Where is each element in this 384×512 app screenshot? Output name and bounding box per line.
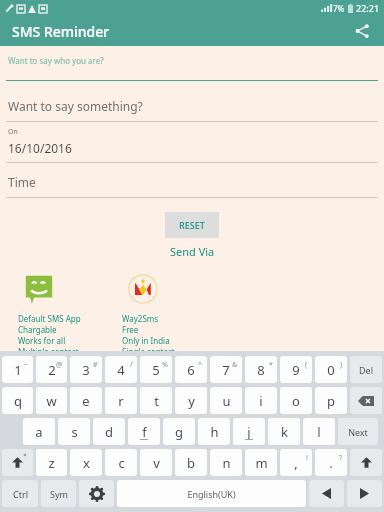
button[interactable]: k — [268, 418, 300, 445]
staticText: k — [281, 423, 288, 441]
button[interactable]: b — [175, 449, 207, 476]
button[interactable]: j — [233, 418, 265, 445]
button[interactable]: , — [280, 449, 312, 476]
button[interactable]: Way2Sms — [122, 274, 200, 351]
button[interactable]: 4 — [105, 356, 137, 383]
button[interactable]: 6 — [175, 356, 207, 383]
staticText: q — [14, 392, 22, 410]
button[interactable]: r — [105, 387, 137, 414]
staticText: 7% — [333, 3, 345, 14]
button[interactable]: 9 — [280, 356, 312, 383]
staticText: ? — [339, 453, 343, 463]
staticText: & — [232, 360, 238, 370]
staticText: s — [71, 423, 78, 441]
staticText: . — [329, 454, 333, 472]
staticText: 5 — [152, 361, 160, 379]
button[interactable]: v — [140, 449, 172, 476]
button[interactable]: Share — [346, 16, 378, 46]
button[interactable]: g — [163, 418, 195, 445]
staticText: Multiple contact — [18, 346, 79, 351]
button[interactable]: 0 — [315, 356, 347, 383]
staticText: / — [130, 360, 133, 370]
staticText: # — [93, 360, 98, 370]
staticText: Want to say something? — [8, 98, 143, 114]
button[interactable]: Move left — [309, 480, 344, 507]
staticText: ^ — [198, 360, 203, 370]
button[interactable]: x — [70, 449, 102, 476]
staticText: n — [222, 454, 231, 472]
button[interactable]: y — [175, 387, 207, 414]
button[interactable]: p — [315, 387, 347, 414]
staticText: 7 — [222, 361, 230, 379]
button[interactable]: z — [36, 449, 67, 476]
button[interactable]: English(UK) — [117, 480, 306, 507]
staticText: z — [48, 454, 55, 472]
staticText: y — [188, 392, 195, 410]
button[interactable]: h — [198, 418, 230, 445]
staticText: t — [154, 392, 159, 410]
button[interactable]: Ctrl — [2, 480, 38, 507]
button[interactable]: . — [315, 449, 347, 476]
staticText: ~ — [24, 360, 29, 370]
staticText: g — [175, 423, 183, 441]
staticText: 0 — [327, 361, 335, 379]
staticText: b — [187, 454, 195, 472]
button[interactable]: t — [140, 387, 172, 414]
staticText: j — [247, 423, 251, 441]
button[interactable]: 5 — [140, 356, 172, 383]
button[interactable]: 2 — [36, 356, 67, 383]
button[interactable]: 7 — [210, 356, 242, 383]
staticText: Single contact — [122, 346, 175, 351]
staticText: ) — [340, 360, 343, 370]
button[interactable]: w — [36, 387, 67, 414]
staticText: a — [35, 423, 43, 441]
staticText: c — [118, 454, 125, 472]
staticText: l — [317, 423, 321, 441]
button[interactable]: Send Via — [170, 244, 215, 259]
button[interactable]: 8 — [245, 356, 277, 383]
button[interactable]: c — [105, 449, 137, 476]
button[interactable]: n — [210, 449, 242, 476]
button[interactable]: Shift — [2, 449, 33, 476]
button[interactable]: Default SMS App — [18, 274, 96, 351]
button[interactable]: 3 — [70, 356, 102, 383]
staticText: m — [255, 454, 268, 472]
staticText: h — [210, 423, 219, 441]
staticText: SMS Reminder — [12, 22, 110, 41]
button[interactable]: Move right — [347, 480, 382, 507]
button[interactable]: s — [58, 418, 90, 445]
button[interactable]: m — [245, 449, 277, 476]
button[interactable]: a — [23, 418, 55, 445]
button[interactable]: Sym — [41, 480, 76, 507]
button[interactable]: Keyboard settings — [79, 480, 114, 507]
staticText: 16/10/2016 — [8, 140, 72, 156]
staticText: 9 — [292, 361, 300, 379]
button[interactable]: d — [93, 418, 125, 445]
staticText: 2 — [48, 361, 56, 379]
button[interactable]: f — [128, 418, 160, 445]
staticText: 4 — [117, 361, 125, 379]
staticText: Next — [348, 426, 368, 438]
button[interactable]: 1 — [2, 356, 33, 383]
staticText: o — [292, 392, 300, 410]
button[interactable]: u — [210, 387, 242, 414]
staticText: * — [269, 360, 273, 370]
button[interactable]: q — [2, 387, 33, 414]
staticText: Free — [122, 324, 139, 335]
button[interactable]: Backspace — [350, 387, 382, 414]
button[interactable]: RESET — [165, 212, 219, 238]
staticText: v — [153, 454, 160, 472]
button[interactable]: i — [245, 387, 277, 414]
staticText: Ctrl — [13, 488, 28, 500]
staticText: 3 — [82, 361, 90, 379]
button[interactable]: l — [303, 418, 335, 445]
staticText: e — [82, 392, 90, 410]
staticText: Chargable — [18, 324, 57, 335]
button[interactable]: Shift — [350, 449, 382, 476]
staticText: r — [118, 392, 124, 410]
button[interactable]: Next — [338, 418, 378, 445]
staticText: On — [8, 127, 18, 137]
button[interactable]: o — [280, 387, 312, 414]
button[interactable]: Del — [350, 356, 382, 383]
button[interactable]: e — [70, 387, 102, 414]
